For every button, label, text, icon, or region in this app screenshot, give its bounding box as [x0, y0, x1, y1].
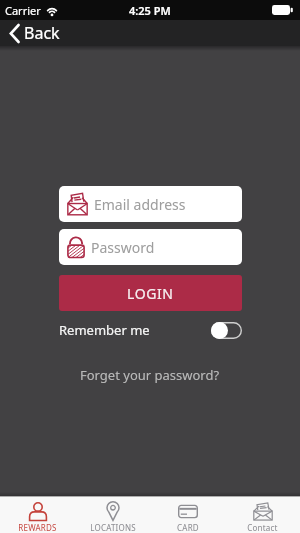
staticText: 4:25 PM [129, 3, 171, 18]
button[interactable]: CARD [150, 497, 225, 533]
button[interactable] [211, 322, 242, 339]
button[interactable]: Forget your password? [80, 366, 220, 384]
staticText: Remember me [59, 321, 150, 339]
button[interactable]: REWARDS [0, 497, 75, 533]
button[interactable]: Password [59, 229, 242, 265]
staticText: Contact [247, 522, 278, 533]
button[interactable]: Back [9, 22, 60, 44]
button[interactable]: LOCATIONS [75, 497, 150, 533]
staticText: Password [91, 238, 155, 257]
staticText: Back [24, 22, 60, 44]
staticText: LOCATIONS [90, 522, 136, 533]
staticText: REWARDS [18, 522, 57, 533]
staticText: Carrier [5, 3, 41, 18]
staticText: Email address [94, 195, 186, 214]
button[interactable]: Email address [59, 186, 242, 222]
staticText: LOGIN [127, 284, 174, 303]
button[interactable]: LOGIN [59, 275, 242, 311]
button[interactable]: Contact [225, 497, 300, 533]
staticText: CARD [177, 522, 199, 533]
